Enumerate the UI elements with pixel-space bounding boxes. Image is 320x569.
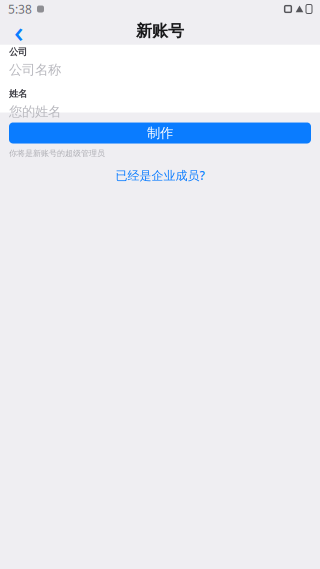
staticText: 已经是企业成员?	[115, 167, 204, 183]
staticText: ‹	[14, 11, 24, 50]
staticText: 5:38	[8, 1, 32, 17]
button[interactable]: 已经是企业成员?	[9, 167, 311, 183]
staticText: 新账号	[136, 21, 184, 41]
button[interactable]: 制作	[9, 122, 311, 143]
staticText: 制作	[147, 125, 173, 141]
staticText: 公司名称	[9, 62, 61, 78]
staticText: 公司	[9, 46, 27, 58]
staticText: 你将是新账号的超级管理员	[9, 148, 105, 158]
button[interactable]: Back	[4, 18, 34, 44]
staticText: 姓名	[9, 88, 27, 99]
staticText: 您的姓名	[9, 103, 61, 120]
